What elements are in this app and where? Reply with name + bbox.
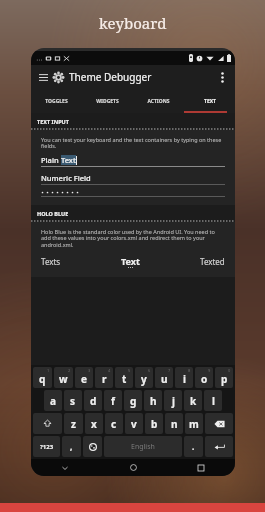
button[interactable]: English bbox=[104, 436, 182, 457]
button[interactable]: 8 bbox=[175, 367, 193, 388]
staticText: You can test your keyboard and the text … bbox=[41, 136, 225, 150]
button[interactable]: Recent apps bbox=[167, 459, 235, 476]
button[interactable]: Enter bbox=[205, 436, 233, 457]
staticText: 2 bbox=[68, 368, 71, 373]
staticText: 6 bbox=[148, 368, 151, 373]
staticText: v bbox=[131, 417, 137, 431]
button[interactable]: 3 bbox=[75, 367, 93, 388]
staticText: 8 bbox=[188, 368, 191, 373]
staticText: h bbox=[150, 394, 157, 408]
staticText: 1 bbox=[47, 368, 50, 373]
button[interactable]: l bbox=[204, 390, 222, 411]
staticText: 5 bbox=[128, 368, 131, 373]
button[interactable]: 7 bbox=[155, 367, 173, 388]
button[interactable]: 1 bbox=[33, 367, 52, 388]
staticText: Plain bbox=[41, 155, 61, 165]
button[interactable]: b bbox=[145, 413, 163, 434]
staticText: t bbox=[122, 372, 127, 386]
staticText: x bbox=[91, 417, 97, 431]
button[interactable]: h bbox=[144, 390, 162, 411]
staticText: y bbox=[141, 372, 147, 386]
button[interactable]: Numeric Field bbox=[41, 173, 91, 183]
staticText: c bbox=[111, 417, 117, 431]
staticText: . bbox=[192, 441, 195, 452]
staticText: q bbox=[39, 372, 46, 386]
staticText: 7 bbox=[168, 368, 171, 373]
button[interactable]: 9 bbox=[195, 367, 213, 388]
staticText: TEXT INPUT bbox=[37, 118, 69, 125]
button[interactable]: 2 bbox=[54, 367, 73, 388]
staticText: 4 bbox=[108, 368, 111, 373]
staticText: i bbox=[183, 372, 186, 386]
button[interactable]: 5 bbox=[115, 367, 133, 388]
staticText: Holo Blue is the standard color used by … bbox=[41, 228, 225, 249]
button[interactable]: 4 bbox=[95, 367, 113, 388]
staticText: k bbox=[190, 394, 197, 408]
staticText: a bbox=[50, 394, 56, 408]
button[interactable]: d bbox=[84, 390, 102, 411]
button[interactable]: Plain bbox=[41, 155, 225, 165]
button[interactable]: WIDGETS bbox=[82, 89, 133, 113]
staticText: TOGGLES bbox=[45, 98, 68, 105]
button[interactable]: f bbox=[104, 390, 122, 411]
button[interactable]: Texts bbox=[41, 256, 61, 267]
staticText: n bbox=[171, 417, 178, 431]
button[interactable]: Texted bbox=[200, 256, 225, 267]
staticText: 9 bbox=[208, 368, 211, 373]
button[interactable]: Navigation menu bbox=[36, 70, 50, 84]
staticText: 3 bbox=[88, 368, 91, 373]
button[interactable]: v bbox=[125, 413, 143, 434]
staticText: g bbox=[130, 394, 137, 408]
button[interactable]: g bbox=[124, 390, 142, 411]
button[interactable]: . bbox=[184, 436, 203, 457]
staticText: TEXT bbox=[204, 98, 216, 105]
button[interactable]: m bbox=[185, 413, 203, 434]
staticText: English bbox=[131, 442, 155, 452]
staticText: r bbox=[102, 372, 107, 386]
staticText: ?123 bbox=[40, 443, 54, 451]
staticText: WIDGETS bbox=[96, 98, 119, 105]
button[interactable]: Back bbox=[31, 459, 99, 476]
staticText: Texts bbox=[41, 256, 61, 267]
button[interactable]: Change language bbox=[83, 436, 102, 457]
staticText: b bbox=[151, 417, 158, 431]
staticText: p bbox=[221, 372, 228, 386]
staticText: Texted bbox=[200, 256, 225, 267]
button[interactable]: More options bbox=[214, 69, 230, 85]
staticText: Text bbox=[61, 155, 76, 165]
button[interactable]: ACTIONS bbox=[133, 89, 184, 113]
button[interactable]: c bbox=[105, 413, 123, 434]
button[interactable]: k bbox=[184, 390, 202, 411]
staticText: u bbox=[161, 372, 168, 386]
button[interactable]: Text bbox=[121, 255, 140, 268]
button[interactable]: j bbox=[164, 390, 182, 411]
button[interactable]: x bbox=[85, 413, 103, 434]
button[interactable]: s bbox=[64, 390, 82, 411]
staticText: d bbox=[90, 394, 97, 408]
button[interactable]: z bbox=[64, 413, 83, 434]
button[interactable] bbox=[41, 191, 225, 194]
staticText: l bbox=[212, 394, 215, 408]
button[interactable]: , bbox=[62, 436, 81, 457]
staticText: z bbox=[71, 417, 76, 431]
staticText: Text bbox=[121, 255, 140, 267]
staticText: HOLO BLUE bbox=[37, 210, 69, 217]
staticText: Theme Debugger bbox=[69, 70, 152, 84]
staticText: w bbox=[59, 372, 68, 386]
button[interactable]: ?123 bbox=[33, 436, 60, 457]
button[interactable]: Home bbox=[99, 459, 167, 476]
staticText: e bbox=[81, 372, 87, 386]
staticText: s bbox=[70, 394, 76, 408]
staticText: f bbox=[111, 394, 115, 408]
button[interactable]: TEXT bbox=[184, 89, 235, 113]
staticText: keyboard bbox=[99, 13, 167, 33]
button[interactable]: TOGGLES bbox=[31, 89, 82, 113]
staticText: o bbox=[201, 372, 208, 386]
button[interactable]: 0 bbox=[215, 367, 233, 388]
staticText: 0 bbox=[228, 368, 231, 373]
button[interactable]: n bbox=[165, 413, 183, 434]
button[interactable]: Backspace bbox=[205, 413, 233, 434]
button[interactable]: 6 bbox=[135, 367, 153, 388]
button[interactable]: a bbox=[44, 390, 62, 411]
button[interactable]: Shift bbox=[33, 413, 62, 434]
